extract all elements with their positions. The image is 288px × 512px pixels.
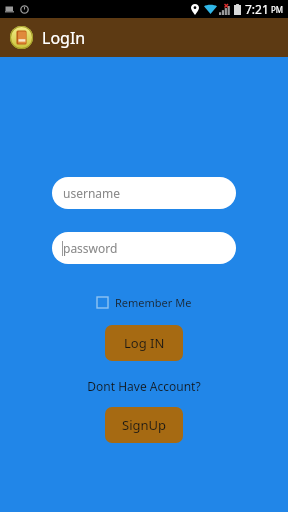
staticText: password xyxy=(63,240,118,256)
button[interactable]: Log IN xyxy=(105,325,183,361)
button[interactable]: password xyxy=(52,232,236,264)
staticText: Log IN xyxy=(124,334,165,352)
staticText: username xyxy=(63,185,121,201)
button[interactable]: SignUp xyxy=(105,407,183,443)
button[interactable]: username xyxy=(52,177,236,209)
staticText: Remember Me xyxy=(115,295,192,310)
button[interactable]: Remember Me xyxy=(93,293,196,312)
staticText: LogIn xyxy=(42,27,86,49)
staticText: Dont Have Account? xyxy=(87,378,201,394)
staticText: SignUp xyxy=(122,416,167,434)
other: App icon xyxy=(10,26,33,49)
staticText: 7:21 xyxy=(245,1,269,17)
staticText: PM xyxy=(271,4,284,15)
